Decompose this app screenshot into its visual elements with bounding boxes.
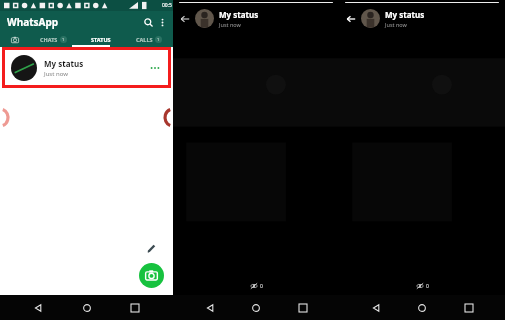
button[interactable]: STATUS	[77, 32, 125, 47]
button[interactable]: Back	[343, 11, 359, 27]
button[interactable]: CALLS	[125, 32, 173, 47]
button[interactable]: Back	[177, 11, 193, 27]
button[interactable]: Recents	[459, 298, 479, 318]
button[interactable]: More options	[156, 16, 169, 29]
staticText: My status	[385, 9, 425, 20]
staticText: My status	[44, 58, 84, 69]
staticText: Just now	[44, 70, 68, 78]
staticText: Just now	[385, 21, 407, 28]
button[interactable]: Search	[140, 14, 156, 30]
staticText: 0	[260, 283, 263, 290]
button[interactable]: Recents	[293, 298, 313, 318]
button[interactable]: Home	[77, 298, 97, 318]
staticText: WhatsApp	[7, 15, 59, 29]
button[interactable]: Status options	[148, 61, 162, 75]
button[interactable]: Camera tab	[0, 32, 30, 47]
button[interactable]: Back	[28, 298, 48, 318]
staticText: Just now	[219, 21, 241, 28]
button[interactable]: Home	[412, 298, 432, 318]
staticText: My status	[219, 9, 259, 20]
button[interactable]: Camera	[139, 263, 164, 288]
button[interactable]: My status	[5, 50, 168, 85]
button[interactable]: Home	[246, 298, 266, 318]
button[interactable]: Back	[200, 298, 220, 318]
staticText: CALLS	[136, 36, 153, 43]
button[interactable]: Viewers	[250, 282, 263, 290]
button[interactable]: Viewers	[416, 282, 429, 290]
staticText: 1	[62, 37, 65, 42]
button[interactable]: CHATS	[30, 32, 77, 47]
button[interactable]: Write status	[143, 240, 160, 257]
button[interactable]: Back	[366, 298, 386, 318]
staticText: 1	[157, 37, 160, 42]
staticText: 0	[426, 283, 429, 290]
staticText: STATUS	[91, 36, 111, 43]
staticText: CHATS	[40, 36, 58, 43]
button[interactable]: Recents	[125, 298, 145, 318]
staticText: 00:5	[162, 2, 172, 9]
